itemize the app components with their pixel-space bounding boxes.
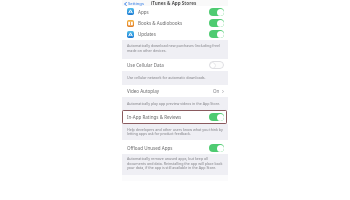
staticText: Video Autoplay	[127, 88, 160, 94]
staticText: letting apps ask for product feedback.	[127, 131, 191, 136]
staticText: Help developers and other users know wha…	[127, 127, 223, 132]
staticText: Use Cellular Data	[127, 62, 164, 68]
staticText: Settings	[128, 1, 144, 6]
staticText: On	[213, 88, 220, 94]
button[interactable]: On	[209, 30, 224, 38]
staticText: Automatically download new purchases (in…	[127, 43, 221, 48]
button[interactable]: On	[209, 144, 224, 152]
button[interactable]: Video Autoplay	[122, 85, 228, 97]
button[interactable]: On	[209, 8, 224, 16]
staticText: Automatically play app preview videos in…	[127, 101, 221, 106]
button[interactable]: Updates	[122, 28, 228, 40]
button[interactable]: On	[209, 113, 224, 121]
staticText: Automatically remove unused apps, but ke…	[127, 156, 208, 161]
staticText: Offload Unused Apps	[127, 145, 173, 151]
button[interactable]: Off	[209, 61, 224, 69]
staticText: made on other devices.	[127, 48, 167, 53]
staticText: Apps	[138, 9, 149, 15]
staticText: Use cellular network for automatic downl…	[127, 75, 206, 80]
button[interactable]: Settings	[124, 1, 144, 6]
staticText: your data, if the app is still available…	[127, 165, 217, 170]
staticText: In-App Ratings & Reviews	[127, 114, 182, 120]
button[interactable]: Offload Unused Apps	[122, 140, 228, 155]
staticText: Updates	[138, 31, 156, 37]
button[interactable]: Use Cellular Data	[122, 59, 228, 71]
staticText: Books & Audiobooks	[138, 20, 183, 26]
button[interactable]: Apps	[122, 6, 228, 17]
button[interactable]: In-App Ratings & Reviews	[122, 110, 228, 124]
staticText: documents and data. Reinstalling the app…	[127, 161, 223, 166]
button[interactable]: On	[209, 19, 224, 27]
button[interactable]: Books & Audiobooks	[122, 17, 228, 29]
staticText: iTunes & App Stores	[151, 0, 197, 6]
